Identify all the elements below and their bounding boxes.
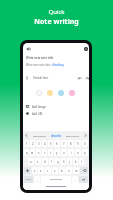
staticText: e (38, 151, 40, 155)
staticText: 4 (44, 142, 46, 146)
button[interactable]: 4 (42, 140, 47, 147)
staticText: s (37, 160, 39, 164)
staticText: d (44, 160, 46, 164)
button[interactable]: z (32, 167, 37, 174)
staticText: descriptors (66, 134, 80, 137)
button[interactable]: Space (41, 176, 71, 183)
button[interactable]: Redo (84, 75, 89, 81)
button[interactable]: y (54, 149, 60, 156)
button[interactable]: d (42, 158, 48, 165)
button[interactable]: Colour (69, 90, 75, 96)
button[interactable]: w (30, 149, 35, 156)
button[interactable]: v (52, 167, 58, 174)
staticText: f (51, 160, 52, 164)
button[interactable]: a (28, 158, 34, 165)
staticText: v (54, 169, 56, 173)
button[interactable]: m (73, 167, 79, 174)
staticText: 7 (63, 142, 65, 146)
staticText: Write new note title (26, 56, 54, 60)
button[interactable]: . (72, 176, 78, 183)
staticText: g (57, 160, 59, 164)
button[interactable]: Symbols (24, 176, 33, 183)
button[interactable]: Back (25, 45, 32, 52)
staticText: b (61, 169, 63, 173)
staticText: . (75, 178, 76, 182)
staticText: Add URL (32, 112, 43, 116)
staticText: z (34, 169, 36, 173)
staticText: r (44, 151, 46, 155)
staticText: 0 (84, 142, 86, 146)
staticText: , (37, 178, 38, 182)
staticText: 9 (77, 142, 79, 146)
button[interactable]: Profile (82, 45, 89, 52)
button[interactable]: 8 (68, 140, 74, 147)
staticText: q (26, 151, 28, 155)
staticText: a (30, 160, 32, 164)
staticText: Default font (33, 76, 49, 80)
button[interactable]: o (75, 149, 81, 156)
staticText: 3 (38, 142, 40, 146)
button[interactable]: Enter (79, 176, 88, 183)
button[interactable]: i (68, 149, 74, 156)
button[interactable]: p (82, 149, 88, 156)
staticText: describe (51, 134, 62, 137)
button[interactable]: q (24, 149, 29, 156)
button[interactable]: h (61, 158, 66, 165)
staticText: 8 (70, 142, 72, 146)
staticText: Write new note desc (26, 63, 52, 67)
staticText: i (71, 151, 72, 155)
button[interactable]: g (55, 158, 60, 165)
button[interactable]: Colour (47, 90, 53, 96)
staticText: k (75, 160, 77, 164)
button[interactable]: e (36, 149, 41, 156)
button[interactable]: j (67, 158, 72, 165)
button[interactable]: Undo (77, 75, 83, 81)
staticText: #hashtag (52, 63, 64, 67)
staticText: c (47, 169, 49, 173)
button[interactable]: u (61, 149, 67, 156)
staticText: 1 (26, 142, 28, 146)
staticText: p (84, 151, 86, 155)
staticText: h (63, 160, 65, 164)
staticText: n (68, 169, 70, 173)
button[interactable]: t (48, 149, 53, 156)
staticText: Add Image (32, 105, 46, 109)
button[interactable]: 1 (24, 140, 29, 147)
staticText: 6 (56, 142, 58, 146)
staticText: l (81, 160, 82, 164)
staticText: x (40, 169, 42, 173)
staticText: description (33, 134, 47, 137)
button[interactable]: 3 (36, 140, 41, 147)
staticText: m (75, 169, 78, 173)
button[interactable]: , (34, 176, 40, 183)
button[interactable]: n (66, 167, 72, 174)
staticText: t (50, 151, 51, 155)
button[interactable]: l (79, 158, 84, 165)
button[interactable]: Add URL (25, 110, 57, 117)
button[interactable]: f (49, 158, 54, 165)
button[interactable]: k (73, 158, 78, 165)
button[interactable]: 2 (30, 140, 35, 147)
button[interactable]: s (35, 158, 41, 165)
button[interactable]: Colour (36, 90, 42, 96)
button[interactable]: 7 (61, 140, 67, 147)
button[interactable]: Colour (58, 90, 64, 96)
button[interactable]: 9 (75, 140, 81, 147)
button[interactable]: c (45, 167, 51, 174)
staticText: o (77, 151, 79, 155)
button[interactable]: 5 (48, 140, 53, 147)
staticText: 2 (32, 142, 34, 146)
button[interactable]: 0 (82, 140, 88, 147)
staticText: y (56, 151, 58, 155)
staticText: w (31, 151, 34, 155)
staticText: 5 (50, 142, 52, 146)
button[interactable]: Add Image (25, 103, 57, 110)
button[interactable]: Backspace (80, 167, 88, 174)
button[interactable]: b (59, 167, 65, 174)
staticText: Note writing (34, 17, 79, 27)
button[interactable]: Shift (24, 167, 31, 174)
staticText: Quick (48, 8, 65, 16)
button[interactable]: 6 (54, 140, 60, 147)
button[interactable]: r (42, 149, 47, 156)
button[interactable]: x (38, 167, 44, 174)
